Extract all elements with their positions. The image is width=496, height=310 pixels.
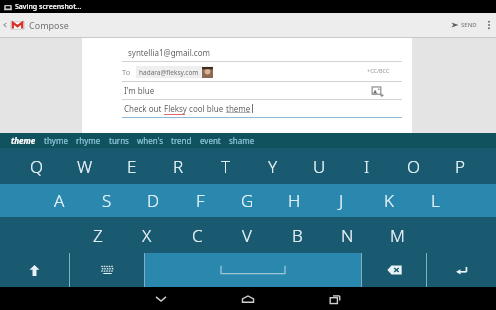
button[interactable]: A <box>36 184 83 217</box>
button[interactable]: Shift <box>0 253 69 287</box>
button[interactable]: Switch keyboard <box>70 253 144 287</box>
staticText: Compose <box>29 19 69 31</box>
staticText: X <box>142 224 152 247</box>
button[interactable]: I <box>343 148 390 184</box>
staticText: I'm blue <box>124 85 155 96</box>
staticText: Q <box>30 155 44 178</box>
staticText: I <box>364 155 370 178</box>
button[interactable]: event <box>200 133 221 148</box>
staticText: syntellia1@gmail.com <box>128 47 211 58</box>
button[interactable]: B <box>272 217 322 253</box>
button[interactable]: S <box>83 184 130 217</box>
staticText: To <box>122 67 131 77</box>
staticText: Fleksy <box>164 103 187 114</box>
button[interactable]: Enter <box>427 253 496 287</box>
button[interactable]: D <box>130 184 177 217</box>
staticText: trend <box>171 135 192 146</box>
staticText: hadara@fleksy.com <box>139 68 199 77</box>
button[interactable]: N <box>322 217 372 253</box>
button[interactable]: I'm blue <box>82 82 412 99</box>
button[interactable]: syntellia1@gmail.com <box>82 44 412 61</box>
button[interactable]: Back <box>0 13 9 37</box>
staticText: theme <box>11 135 36 146</box>
staticText: D <box>147 189 160 212</box>
staticText: E <box>127 155 137 178</box>
button[interactable]: Z <box>73 217 122 253</box>
staticText: F <box>196 189 205 212</box>
staticText: S <box>102 189 112 212</box>
button[interactable]: C <box>172 217 222 253</box>
button[interactable]: R <box>155 148 202 184</box>
staticText: A <box>54 189 65 212</box>
staticText: U <box>313 155 326 178</box>
button[interactable]: To <box>82 62 412 81</box>
staticText: K <box>384 189 394 212</box>
button[interactable]: X <box>122 217 172 253</box>
staticText: V <box>242 224 252 247</box>
button[interactable] <box>9 17 26 34</box>
staticText: theme <box>226 103 251 114</box>
staticText: H <box>288 189 301 212</box>
button[interactable]: F <box>177 184 224 217</box>
staticText: when's <box>137 135 163 146</box>
staticText: W <box>77 155 93 178</box>
button[interactable]: J <box>318 184 365 217</box>
button[interactable]: K <box>365 184 412 217</box>
button[interactable]: V <box>222 217 272 253</box>
button[interactable]: SEND <box>451 13 477 37</box>
staticText: event <box>200 135 221 146</box>
button[interactable]: turns <box>109 133 129 148</box>
button[interactable]: Check out <box>82 100 412 117</box>
button[interactable]: P <box>437 148 484 184</box>
button[interactable]: rhyme <box>76 133 101 148</box>
button[interactable]: More options <box>482 13 496 37</box>
staticText: C <box>192 224 203 247</box>
staticText: SEND <box>461 21 477 29</box>
staticText: P <box>455 155 466 178</box>
staticText: rhyme <box>76 135 101 146</box>
staticText: Saving screenshot... <box>15 2 82 12</box>
staticText: B <box>292 224 303 247</box>
button[interactable]: Y <box>249 148 296 184</box>
staticText: shame <box>229 135 255 146</box>
button[interactable]: O <box>390 148 437 184</box>
button[interactable]: Space <box>145 253 361 287</box>
button[interactable]: shame <box>229 133 255 148</box>
staticText: thyme <box>44 135 68 146</box>
staticText: R <box>173 155 184 178</box>
button[interactable]: E <box>108 148 155 184</box>
button[interactable]: L <box>412 184 459 217</box>
staticText: M <box>390 224 405 247</box>
button[interactable]: thyme <box>44 133 68 148</box>
staticText: T <box>221 155 231 178</box>
button[interactable]: W <box>61 148 108 184</box>
button[interactable]: Attach image <box>371 85 385 99</box>
staticText: O <box>407 155 421 178</box>
button[interactable]: T <box>202 148 249 184</box>
staticText: Check out <box>124 103 164 114</box>
button[interactable]: Q <box>13 148 61 184</box>
button[interactable]: trend <box>171 133 192 148</box>
staticText: Z <box>93 224 103 247</box>
staticText: J <box>339 189 344 212</box>
button[interactable]: Backspace <box>362 253 426 287</box>
button[interactable]: G <box>224 184 271 217</box>
staticText: N <box>341 224 354 247</box>
button[interactable]: M <box>372 217 422 253</box>
staticText: turns <box>109 135 129 146</box>
staticText: Y <box>268 155 278 178</box>
staticText: L <box>431 189 440 212</box>
button[interactable]: Recent apps <box>324 288 346 310</box>
button[interactable]: Home <box>237 288 259 310</box>
button[interactable]: theme <box>11 133 36 148</box>
button[interactable]: when's <box>137 133 163 148</box>
staticText: cool blue <box>187 103 226 114</box>
button[interactable]: Hide keyboard <box>150 288 172 310</box>
staticText: G <box>241 189 254 212</box>
staticText: +CC/BCC <box>367 67 390 74</box>
button[interactable]: U <box>296 148 343 184</box>
button[interactable]: H <box>271 184 318 217</box>
